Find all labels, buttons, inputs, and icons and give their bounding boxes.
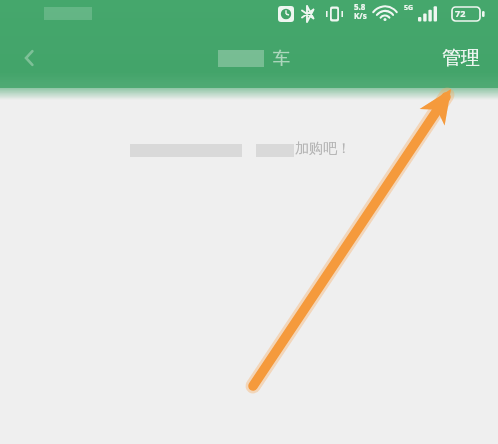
staticText: K/s xyxy=(354,10,367,21)
staticText: 5.8 xyxy=(354,1,366,12)
staticText: 管理 xyxy=(442,46,480,70)
button[interactable]: Back xyxy=(8,36,52,80)
staticText: 5G xyxy=(404,3,414,13)
staticText: 72 xyxy=(455,7,466,19)
staticText: 加购吧！ xyxy=(295,140,351,158)
button[interactable]: 管理 xyxy=(430,28,492,88)
staticText: 车 xyxy=(273,48,290,69)
